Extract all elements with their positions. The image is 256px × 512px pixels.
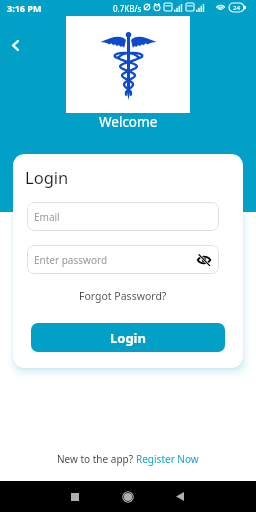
staticText: Login <box>25 166 69 188</box>
button[interactable]: Email <box>27 202 219 231</box>
button[interactable]: Register Now <box>136 452 199 466</box>
staticText: Email <box>34 210 60 224</box>
staticText: New to the app? <box>57 452 136 466</box>
button[interactable]: Back <box>1 31 29 59</box>
staticText: 0.7KB/s <box>113 3 142 14</box>
staticText: Welcome <box>99 113 158 131</box>
staticText: Register Now <box>136 452 199 466</box>
button[interactable]: Toggle password visibility <box>194 250 214 270</box>
staticText: 24 <box>233 4 240 12</box>
button[interactable]: Recent apps <box>58 481 92 512</box>
staticText: Enter password <box>34 253 108 267</box>
button[interactable]: Enter password <box>27 245 219 274</box>
staticText: Login <box>110 329 146 347</box>
button[interactable]: Back <box>163 481 197 512</box>
button[interactable]: Home <box>111 481 145 512</box>
button[interactable]: Forgot Password? <box>76 286 170 306</box>
staticText: Forgot Password? <box>79 289 167 303</box>
button[interactable]: Login <box>31 323 225 352</box>
staticText: 3:16 PM <box>7 2 42 14</box>
